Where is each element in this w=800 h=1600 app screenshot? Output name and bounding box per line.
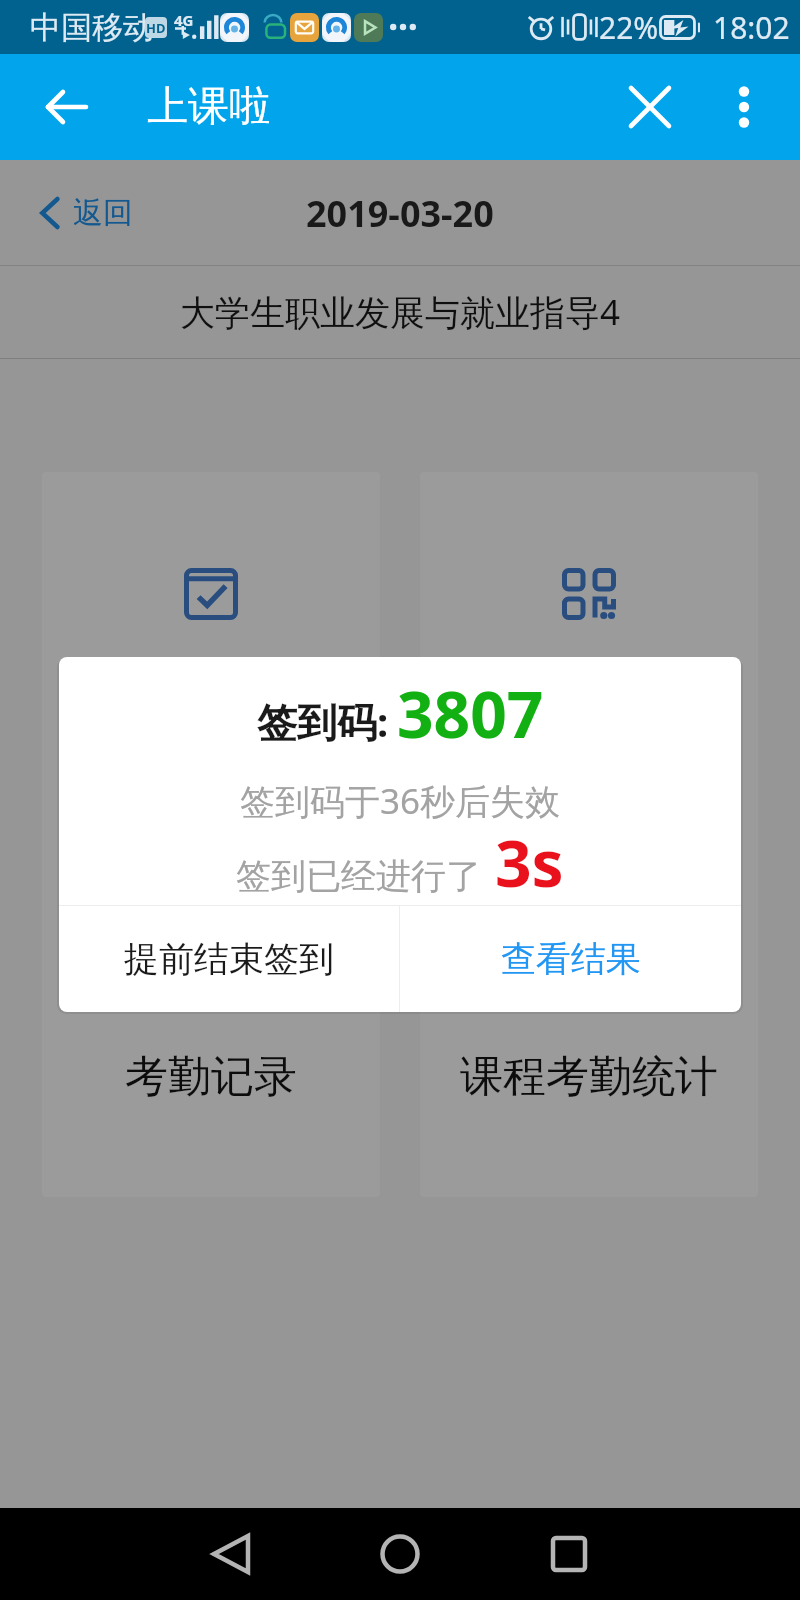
button[interactable]: 查看结果 xyxy=(400,906,741,1012)
staticText: 22% xyxy=(599,7,659,48)
button[interactable]: Recents xyxy=(524,1509,614,1599)
button[interactable]: Back xyxy=(186,1509,276,1599)
button[interactable]: 返回 xyxy=(40,194,133,232)
staticText: 提前结束签到 xyxy=(124,937,334,981)
staticText: 4G xyxy=(174,10,194,30)
staticText: 3s xyxy=(495,819,564,906)
button[interactable]: Home xyxy=(355,1509,445,1599)
button[interactable]: More options xyxy=(706,69,782,145)
button[interactable]: Back xyxy=(26,66,108,148)
staticText: 2019-03-20 xyxy=(306,189,494,238)
staticText: 课程考勤统计 xyxy=(460,1050,718,1104)
staticText: 3807 xyxy=(397,670,544,757)
button[interactable]: Close xyxy=(612,69,688,145)
staticText: 签到码于36秒后失效 xyxy=(240,777,561,825)
staticText: 18:02 xyxy=(713,7,790,48)
staticText: 中国移动 xyxy=(30,8,154,47)
staticText: HD xyxy=(146,19,166,37)
staticText: 查看结果 xyxy=(501,937,641,981)
staticText: 签到已经进行了 xyxy=(236,854,481,898)
button[interactable]: 课程考勤统计 xyxy=(420,472,758,1197)
staticText: 返回 xyxy=(73,194,133,232)
button[interactable]: 提前结束签到 xyxy=(59,906,399,1012)
staticText: 签到码: xyxy=(257,694,389,749)
staticText: 大学生职业发展与就业指导4 xyxy=(180,288,621,336)
staticText: 考勤记录 xyxy=(125,1050,297,1104)
button[interactable]: 考勤记录 xyxy=(42,472,380,1197)
staticText: 上课啦 xyxy=(147,81,270,133)
